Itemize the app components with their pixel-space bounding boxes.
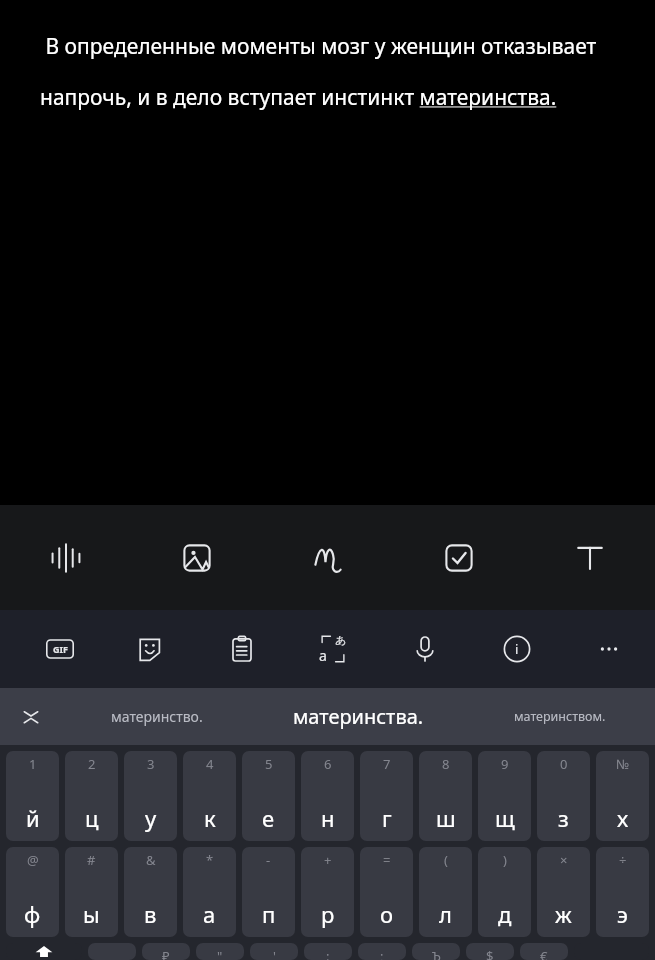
staticText: в [144,899,157,929]
staticText: 9 [501,755,509,773]
staticText: 0 [560,755,568,773]
staticText: $ [486,947,494,960]
staticText: материнством. [514,708,606,725]
staticText: + [324,851,332,869]
staticText: ц [85,803,99,833]
button[interactable]: + [301,847,354,937]
button[interactable]: ₽ [142,943,190,960]
button[interactable]: ' [250,943,298,960]
staticText: ( [444,851,448,869]
staticText: 3 [147,755,155,773]
staticText: ж [555,899,572,929]
staticText: р [321,899,335,929]
button[interactable]: 8 [419,751,472,841]
button[interactable]: 3 [124,751,177,841]
button[interactable]: 1 [6,751,59,841]
staticText: а [203,899,216,929]
button[interactable]: 0 [537,751,590,841]
staticText: * [206,851,214,869]
button[interactable]: 5 [242,751,295,841]
button[interactable]: Drawing [262,505,393,610]
button[interactable]: GIF [14,610,105,688]
button[interactable]: Voice input [379,610,471,688]
staticText: 4 [206,755,214,773]
button[interactable]: - [242,847,295,937]
staticText: ш [436,803,456,833]
button[interactable]: Ъ [412,943,460,960]
staticText: # [87,851,96,869]
button[interactable]: * [183,847,236,937]
staticText: п [262,899,276,929]
button[interactable]: ( [419,847,472,937]
staticText: ы [83,899,100,929]
staticText: a [319,646,327,665]
button[interactable]: Clipboard [196,610,287,688]
staticText: 2 [88,755,96,773]
staticText: щ [495,803,515,833]
staticText: № [616,755,630,773]
staticText: あ [335,633,347,647]
button[interactable]: Info [471,610,563,688]
button[interactable]: × [537,847,590,937]
button[interactable]: материнства. [252,688,465,745]
staticText: 6 [324,755,332,773]
staticText: В определенные моменты мозг у женщин отк… [40,32,627,111]
button[interactable]: 2 [65,751,118,841]
button[interactable]: Shift [6,943,82,960]
staticText: у [145,803,157,833]
button[interactable]: ÷ [596,847,649,937]
button[interactable]: Text formatting [524,505,655,610]
staticText: к [204,803,216,833]
staticText: @ [27,851,39,869]
staticText: х [617,803,629,833]
staticText: е [262,803,275,833]
button[interactable]: № [596,751,649,841]
staticText: л [439,899,452,929]
staticText: Ъ [432,947,441,960]
staticText: з [558,803,569,833]
button[interactable]: 6 [301,751,354,841]
staticText: € [540,947,548,960]
button[interactable]: : [304,943,352,960]
button[interactable]: ; [358,943,406,960]
button[interactable]: ) [478,847,531,937]
staticText: материнство. [111,707,203,726]
button[interactable]: $ [466,943,514,960]
button[interactable]: € [520,943,568,960]
staticText: ) [503,851,507,869]
button[interactable]: 7 [360,751,413,841]
staticText: i [515,640,519,658]
staticText: 1 [29,755,37,773]
button[interactable]: Stickers [105,610,196,688]
staticText: ' [273,947,276,960]
button[interactable]: 4 [183,751,236,841]
button[interactable]: материнство. [62,688,252,745]
button[interactable]: Checklist [393,505,524,610]
button[interactable]: & [124,847,177,937]
staticText: материнства. [293,703,424,730]
staticText: 7 [383,755,391,773]
staticText: - [266,851,271,869]
button[interactable]: " [196,943,244,960]
button[interactable]: More options [563,610,655,688]
staticText: д [498,899,512,929]
staticText: " [217,947,223,960]
button[interactable]: 9 [478,751,531,841]
button[interactable]: # [65,847,118,937]
staticText: г [382,803,392,833]
button[interactable]: Insert image [131,505,262,610]
button[interactable]: я [88,943,136,960]
staticText: о [380,899,394,929]
button[interactable]: Expand suggestions [0,688,62,745]
button[interactable]: = [360,847,413,937]
staticText: × [560,851,568,869]
staticText: ÷ [619,851,627,869]
staticText: ф [24,899,41,929]
button[interactable]: @ [6,847,59,937]
staticText: = [383,851,391,869]
staticText: : [326,947,330,960]
button[interactable]: Audio recording [0,505,131,610]
button[interactable]: Translate [287,610,379,688]
button[interactable]: материнством. [465,688,655,745]
